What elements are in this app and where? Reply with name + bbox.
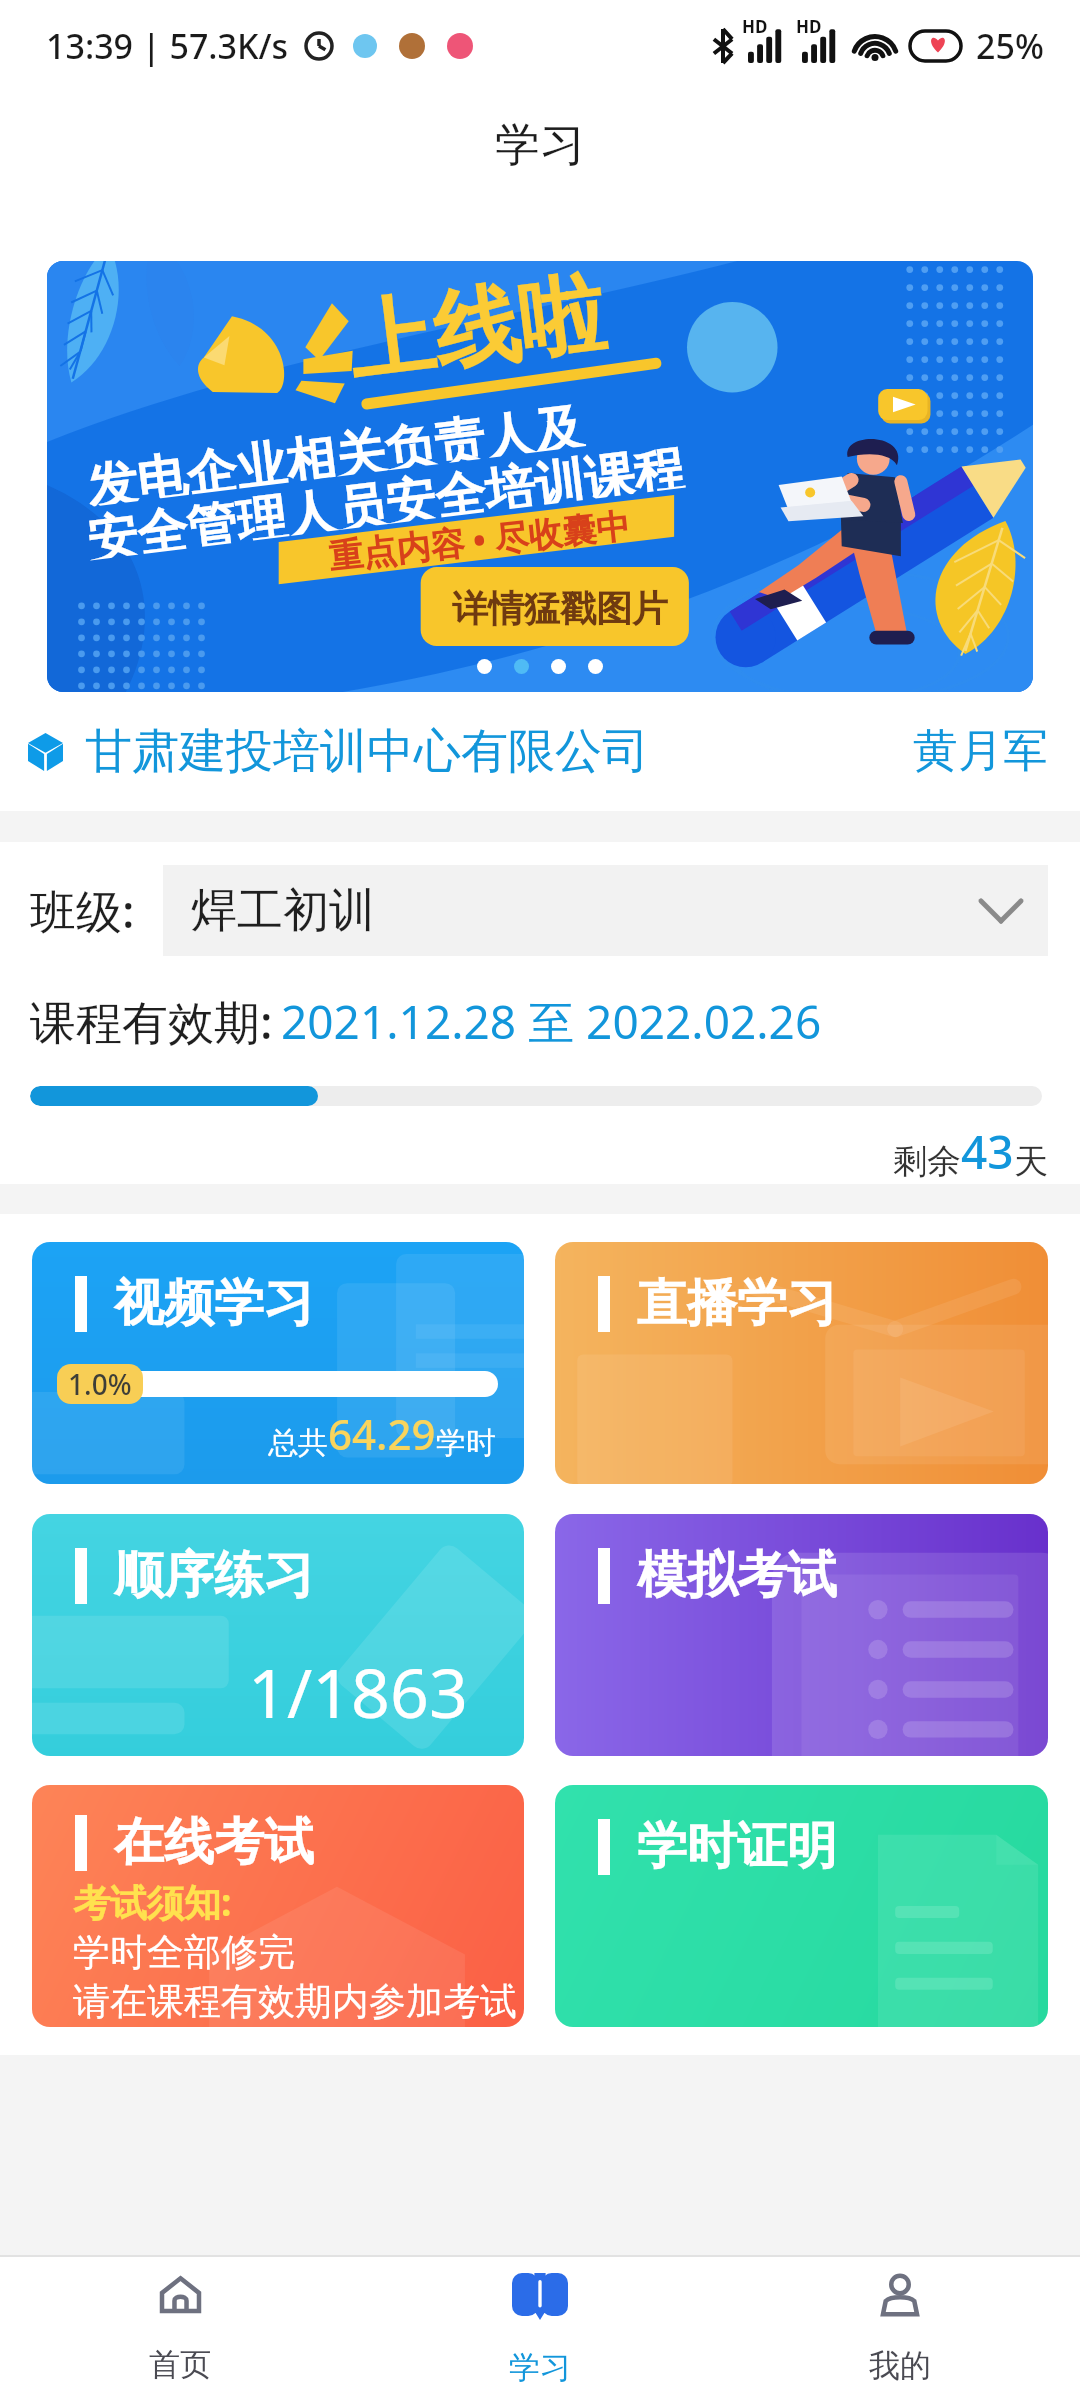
staticText: 班级:: [30, 879, 135, 942]
button[interactable]: 甘肃建投培训中心有限公司: [28, 692, 1048, 811]
other: 我的: [877, 2272, 923, 2318]
staticText: 在线考试: [114, 1811, 314, 1874]
staticText: 模拟考试: [637, 1544, 837, 1607]
staticText: 黄月军: [913, 723, 1048, 780]
staticText: 请在课程有效期内参加考试: [73, 1978, 517, 2025]
other: 学习: [512, 2270, 568, 2320]
staticText: 2021.12.28 至 2022.02.26: [281, 990, 822, 1053]
button[interactable]: 上线啦: [47, 261, 1033, 692]
button[interactable]: 我的: [720, 2257, 1080, 2400]
staticText: 甘肃建投培训中心有限公司: [85, 722, 649, 781]
staticText: 64.29: [328, 1405, 436, 1462]
staticText: 学习: [495, 117, 585, 174]
staticText: 视频学习: [114, 1272, 314, 1335]
staticText: 天: [1014, 1140, 1048, 1183]
staticText: 学时全部修完: [73, 1929, 295, 1976]
button[interactable]: 班级:: [30, 865, 1048, 956]
staticText: 课程有效期:: [30, 990, 273, 1053]
staticText: 总共: [268, 1424, 328, 1462]
staticText: 上线啦: [342, 261, 610, 390]
staticText: 发电企业相关负责人及: [84, 396, 586, 507]
staticText: 首页: [149, 2345, 211, 2384]
button[interactable]: 首页: [0, 2257, 360, 2400]
staticText: 详情猛戳图片: [452, 586, 668, 631]
staticText: 学习: [509, 2348, 571, 2387]
button[interactable]: 学时证明: [555, 1785, 1048, 2027]
staticText: 剩余: [893, 1140, 961, 1183]
staticText: 43: [961, 1120, 1014, 1183]
staticText: 1.0%: [68, 1365, 132, 1403]
staticText: HD: [796, 15, 822, 38]
other: 首页: [159, 2274, 202, 2317]
staticText: 25%: [976, 23, 1044, 69]
staticText: 焊工初训: [191, 882, 375, 940]
button[interactable]: 模拟考试: [555, 1514, 1048, 1756]
staticText: 顺序练习: [114, 1544, 314, 1607]
button[interactable]: 直播学习: [555, 1242, 1048, 1484]
staticText: 直播学习: [637, 1272, 837, 1335]
button[interactable]: 在线考试: [32, 1785, 524, 2027]
staticText: 考试须知:: [73, 1876, 232, 1927]
staticText: HD: [742, 15, 768, 38]
button[interactable]: 顺序练习: [32, 1514, 524, 1756]
staticText: 安全管理人员安全培训课程: [84, 438, 686, 560]
staticText: 我的: [869, 2346, 931, 2385]
staticText: 学时: [436, 1424, 496, 1462]
staticText: 1/1863: [248, 1645, 468, 1738]
staticText: 13:39 | 57.3K/s: [46, 23, 289, 69]
button[interactable]: 1.0%: [32, 1242, 524, 1484]
button[interactable]: 学习: [360, 2257, 720, 2400]
staticText: 学时证明: [637, 1815, 837, 1878]
staticText: 重点内容 • 尽收囊中: [326, 501, 632, 579]
